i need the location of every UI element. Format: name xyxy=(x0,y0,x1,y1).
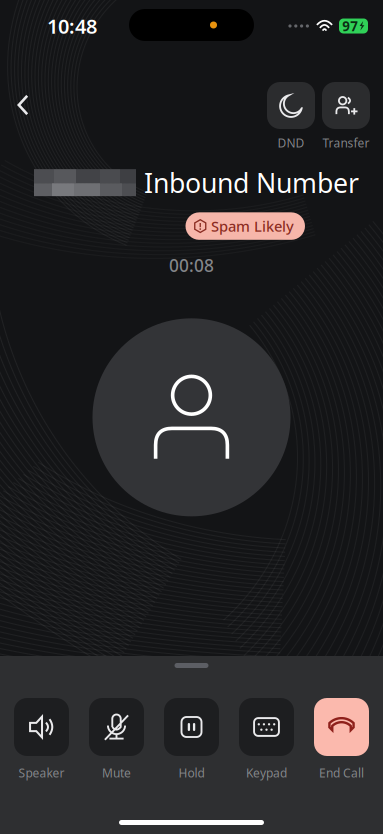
staticText: 00:08 xyxy=(169,254,214,277)
staticText: 97 xyxy=(342,17,358,35)
button[interactable]: Keypad xyxy=(239,698,294,781)
staticText: Speaker xyxy=(18,765,64,781)
button[interactable]: Speaker xyxy=(14,698,69,781)
staticText: Keypad xyxy=(246,765,287,781)
button[interactable]: DND xyxy=(267,82,315,151)
button[interactable]: End Call xyxy=(314,698,369,781)
staticText: Spam Likely xyxy=(211,216,294,236)
button[interactable]: Transfer xyxy=(322,82,370,151)
staticText: Transfer xyxy=(322,135,369,151)
staticText: DND xyxy=(277,135,304,151)
button[interactable]: Back xyxy=(0,82,46,128)
staticText: 10:48 xyxy=(47,13,97,39)
button[interactable]: Mute xyxy=(89,698,144,781)
button[interactable]: Hold xyxy=(164,698,219,781)
staticText: Inbound Number xyxy=(144,165,359,200)
staticText: End Call xyxy=(319,765,364,781)
staticText: Mute xyxy=(102,765,131,781)
staticText: Hold xyxy=(178,765,204,781)
